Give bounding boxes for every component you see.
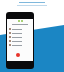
button[interactable] [7,31,33,35]
button[interactable] [7,43,33,47]
button[interactable] [7,27,33,31]
button[interactable] [7,35,33,39]
button[interactable] [7,39,33,43]
button[interactable]: Add [16,53,20,57]
